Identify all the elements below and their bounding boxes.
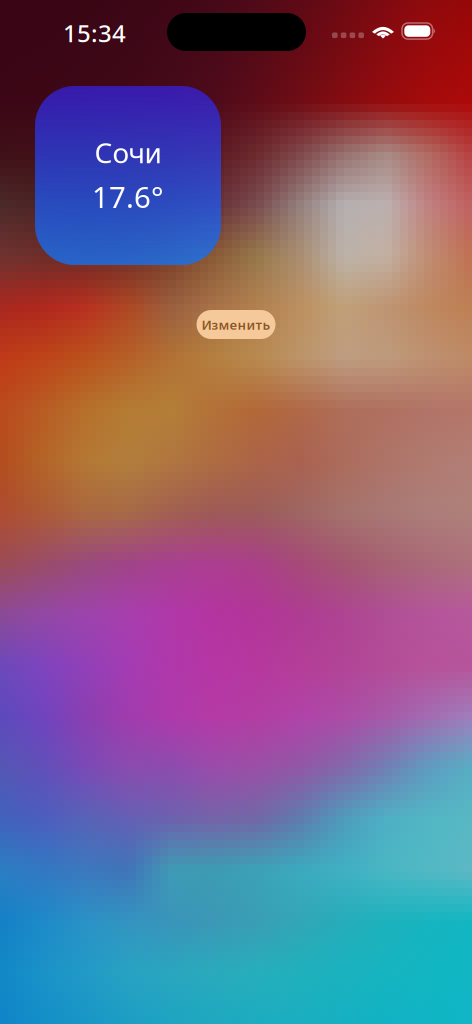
- staticText: Сочи: [94, 134, 161, 171]
- staticText: 17.6°: [92, 177, 164, 216]
- staticText: Изменить: [201, 316, 270, 333]
- staticText: 15:34: [63, 17, 126, 49]
- button[interactable]: Сочи: [35, 86, 221, 265]
- button[interactable]: Изменить: [196, 310, 275, 339]
